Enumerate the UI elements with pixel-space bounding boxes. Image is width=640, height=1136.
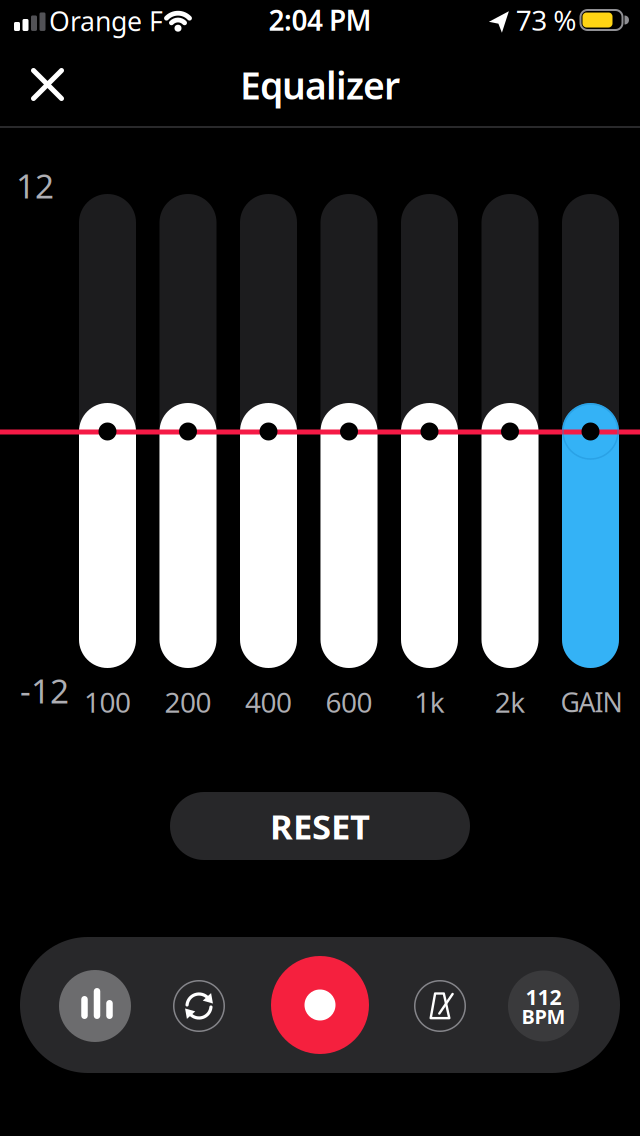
button[interactable]: Loop xyxy=(173,980,225,1032)
button[interactable]: RESET xyxy=(170,792,470,860)
staticText: BPM xyxy=(521,1003,565,1029)
staticText: 100 xyxy=(84,683,131,721)
staticText: 2k xyxy=(495,683,525,721)
button[interactable]: 112 BPM xyxy=(508,970,579,1041)
button[interactable]: 200 slider xyxy=(159,194,216,668)
staticText: GAIN xyxy=(560,684,622,720)
button[interactable]: Record xyxy=(271,956,369,1054)
staticText: 73 % xyxy=(516,1,576,39)
button[interactable]: GAIN slider xyxy=(562,194,619,668)
staticText: Equalizer xyxy=(240,60,400,110)
staticText: 600 xyxy=(325,683,372,721)
staticText: 200 xyxy=(164,683,211,721)
button[interactable]: 600 slider xyxy=(320,194,377,668)
staticText: RESET xyxy=(270,803,370,849)
staticText: 112 xyxy=(525,983,561,1011)
button[interactable]: 400 slider xyxy=(240,194,297,668)
staticText: 12 xyxy=(16,163,54,208)
button[interactable]: 100 slider xyxy=(79,194,136,668)
staticText: Orange F xyxy=(49,3,163,39)
button[interactable]: Metronome xyxy=(414,980,466,1032)
button[interactable]: 2k slider xyxy=(481,194,538,668)
button[interactable]: Levels xyxy=(59,970,131,1042)
staticText: 1k xyxy=(414,683,445,721)
button[interactable]: 1k slider xyxy=(401,194,458,668)
staticText: -12 xyxy=(20,668,69,713)
staticText: 2:04 PM xyxy=(268,1,371,39)
button[interactable]: Close xyxy=(25,62,69,106)
staticText: 400 xyxy=(245,683,292,721)
